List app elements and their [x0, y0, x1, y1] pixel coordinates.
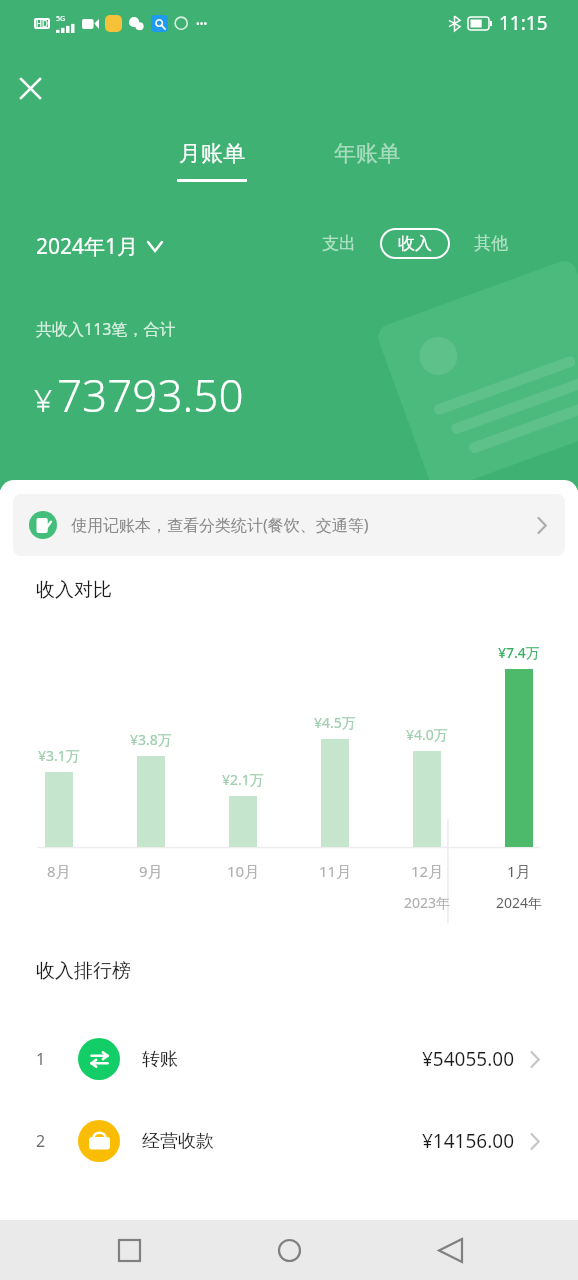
staticText: ¥7.4万: [498, 643, 540, 662]
button[interactable]: Recents: [97, 1220, 161, 1280]
staticText: ¥2.1万: [222, 770, 264, 789]
staticText: ¥: [34, 378, 53, 422]
button[interactable]: 收入: [380, 228, 450, 259]
staticText: 经营收款: [142, 1130, 214, 1153]
staticText: ¥4.5万: [314, 713, 356, 732]
staticText: ¥3.1万: [38, 746, 80, 765]
staticText: 支出: [322, 233, 356, 254]
staticText: 2: [36, 1130, 46, 1152]
staticText: 73793.50: [57, 365, 244, 425]
staticText: HD: [36, 18, 48, 29]
staticText: 5G: [56, 14, 66, 24]
staticText: 11月: [319, 861, 352, 881]
staticText: 收入排行榜: [36, 959, 131, 983]
staticText: ¥54055.00: [422, 1046, 515, 1072]
staticText: 收入对比: [36, 578, 112, 602]
button[interactable]: 1: [0, 1031, 578, 1087]
button[interactable]: 2: [0, 1113, 578, 1169]
staticText: 2023年: [404, 893, 451, 912]
staticText: 2024年1月: [36, 232, 139, 261]
staticText: •••: [196, 17, 208, 31]
staticText: 9月: [139, 861, 163, 881]
button[interactable]: Close: [8, 66, 52, 110]
staticText: ¥14156.00: [422, 1128, 515, 1154]
staticText: 11:15: [499, 10, 548, 36]
staticText: 年账单: [334, 140, 400, 168]
staticText: ¥4.0万: [406, 725, 448, 744]
button[interactable]: Back: [418, 1220, 482, 1280]
staticText: 月账单: [179, 140, 245, 168]
staticText: 2024年: [496, 893, 543, 912]
button[interactable]: 使用记账本，查看分类统计(餐饮、交通等): [13, 494, 565, 556]
button[interactable]: 月账单: [171, 138, 253, 184]
button[interactable]: 支出: [320, 228, 358, 259]
staticText: 1月: [507, 861, 531, 881]
staticText: 转账: [142, 1048, 178, 1071]
button[interactable]: 其他: [472, 228, 510, 259]
staticText: 12月: [411, 861, 444, 881]
staticText: 其他: [474, 233, 508, 254]
staticText: 收入: [398, 233, 432, 254]
button[interactable]: 年账单: [326, 138, 408, 184]
staticText: ¥3.8万: [130, 730, 172, 749]
button[interactable]: 2024年1月: [36, 232, 162, 261]
staticText: 共收入113笔，合计: [36, 318, 176, 340]
staticText: 10月: [227, 861, 260, 881]
staticText: 1: [36, 1048, 46, 1070]
button[interactable]: Home: [257, 1220, 321, 1280]
staticText: 8月: [47, 861, 71, 881]
staticText: 使用记账本，查看分类统计(餐饮、交通等): [71, 514, 369, 536]
